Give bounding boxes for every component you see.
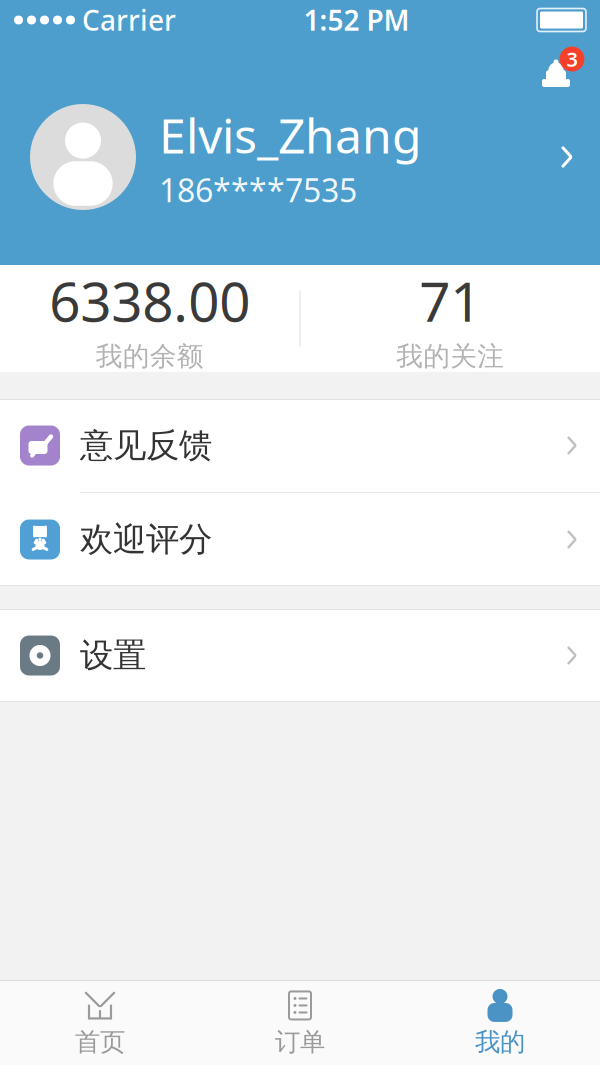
staticText: 我的余额	[96, 340, 204, 373]
button[interactable]: 6338.00	[0, 265, 299, 372]
button[interactable]: 71	[300, 265, 600, 372]
staticText: 6338.00	[49, 264, 250, 337]
staticText: 1:52 PM	[303, 1, 409, 39]
button[interactable]: 我的	[400, 981, 600, 1065]
staticText: 欢迎评分	[80, 519, 212, 560]
button[interactable]: 欢迎评分	[0, 493, 600, 586]
staticText: 我的关注	[396, 340, 504, 373]
staticText: Elvis_Zhang	[159, 103, 422, 167]
staticText: 订单	[275, 1026, 325, 1057]
staticText: 3	[566, 46, 577, 72]
button[interactable]: 订单	[200, 981, 400, 1065]
staticText: 186****7535	[159, 169, 357, 211]
button[interactable]: 首页	[0, 981, 200, 1065]
button[interactable]: 意见反馈	[0, 399, 600, 493]
button[interactable]: 设置	[0, 609, 600, 702]
staticText: 意见反馈	[80, 425, 212, 466]
staticText: 我的	[475, 1026, 525, 1057]
staticText: Carrier	[82, 1, 176, 39]
button[interactable]: Elvis_Zhang	[0, 102, 600, 212]
staticText: 71	[419, 264, 481, 337]
staticText: 设置	[80, 635, 146, 676]
button[interactable]: Notifications, 3 unread	[532, 42, 600, 100]
staticText: 首页	[75, 1026, 125, 1057]
